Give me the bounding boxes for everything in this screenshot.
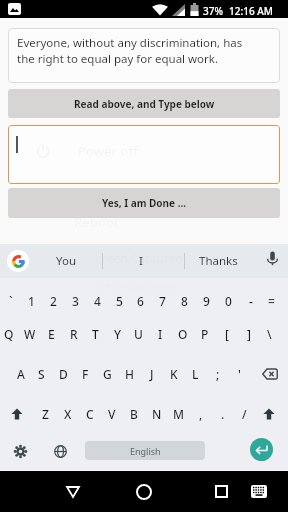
staticText: H [125,366,134,382]
button[interactable]: D [53,354,74,394]
button[interactable]: - [240,280,261,322]
button[interactable] [257,354,282,394]
staticText: English [130,445,161,457]
staticText: A [17,366,25,382]
button[interactable]: . [212,394,233,434]
button[interactable]: English [85,441,205,460]
button[interactable]: B [123,394,144,434]
staticText: ' [238,366,241,382]
staticText: , [199,406,203,422]
staticText: N [152,406,162,422]
button[interactable] [245,471,273,512]
button[interactable] [258,394,280,434]
button[interactable]: Q [0,314,19,354]
button[interactable] [7,250,29,272]
staticText: 6 [137,293,144,309]
button[interactable]: E [41,314,62,354]
button[interactable]: F [75,354,96,394]
button[interactable]: X [57,394,78,434]
staticText: 4 [94,293,101,309]
button[interactable]: 5 [109,280,130,322]
button[interactable]: 1 [21,280,42,322]
button[interactable]: T [85,314,106,354]
button[interactable]: W [19,314,40,354]
staticText: I [158,326,163,342]
staticText: 9 [203,293,210,309]
button[interactable]: Yes, I am Done ... [8,188,280,218]
button[interactable]: 8 [174,280,195,322]
button[interactable]: V [101,394,122,434]
staticText: - [249,293,253,309]
button[interactable]: [ [216,314,237,354]
button[interactable]: P [194,314,215,354]
button[interactable]: ] [238,314,259,354]
staticText: 37% [203,4,223,18]
button[interactable]: H [119,354,140,394]
button[interactable]: N [146,394,167,434]
button[interactable]: You [40,244,92,278]
staticText: X [64,406,72,422]
staticText: ; [216,366,220,382]
button[interactable]: M [168,394,189,434]
staticText: 7 [159,293,166,309]
button[interactable] [48,439,72,463]
staticText: Thanks [199,253,238,269]
button[interactable] [207,471,235,512]
staticText: Read above, and Type below [74,97,215,111]
button[interactable]: / [234,394,255,434]
staticText: L [192,366,199,382]
button[interactable]: J [141,354,162,394]
staticText: 3 [72,293,79,309]
button[interactable]: G [97,354,118,394]
staticText: E [48,326,55,342]
staticText: . [221,406,225,422]
button[interactable]: C [79,394,100,434]
button[interactable]: 2 [43,280,64,322]
button[interactable] [130,471,158,512]
button[interactable]: 9 [196,280,217,322]
button[interactable]: K [163,354,184,394]
staticText: O [178,326,188,342]
button[interactable]: U [128,314,149,354]
button[interactable]: \ [259,314,280,354]
button[interactable]: S [31,354,52,394]
staticText: / [242,406,247,422]
button[interactable]: Power off [8,125,280,184]
button[interactable]: 4 [87,280,108,322]
button[interactable]: 0 [218,280,239,322]
button[interactable]: R [63,314,84,354]
staticText: 1 [28,293,35,309]
button[interactable]: ' [229,354,250,394]
button[interactable]: L [185,354,206,394]
staticText: 0 [225,293,232,309]
button[interactable]: ; [207,354,228,394]
button[interactable]: Y [107,314,128,354]
button[interactable]: O [172,314,193,354]
staticText: S [38,366,45,382]
button[interactable] [59,471,87,512]
button[interactable]: ` [0,280,21,322]
button[interactable] [250,438,273,461]
button[interactable] [8,439,32,463]
button[interactable]: Read above, and Type below [8,89,280,118]
button[interactable] [266,251,279,266]
staticText: F [82,366,89,382]
button[interactable]: , [190,394,211,434]
staticText: ` [9,293,13,309]
staticText: 8 [181,293,188,309]
button[interactable]: A [10,354,31,394]
button[interactable]: Thanks [188,244,248,278]
button[interactable]: 7 [152,280,173,322]
staticText: I [139,253,143,269]
staticText: Z [42,406,49,422]
button[interactable]: I [150,314,171,354]
button[interactable] [6,394,28,434]
button[interactable]: Z [35,394,56,434]
button[interactable]: 6 [130,280,151,322]
staticText: Q [4,326,14,342]
staticText: K [170,366,178,382]
staticText: J [150,366,154,382]
button[interactable]: 3 [65,280,86,322]
button[interactable]: = [261,280,282,322]
button[interactable]: I [110,244,172,278]
